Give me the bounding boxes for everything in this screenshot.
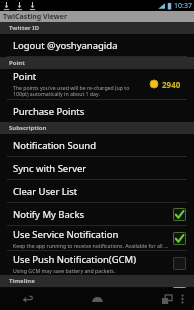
button[interactable]: Recent apps — [156, 288, 178, 310]
button[interactable]: Show User Name — [0, 287, 194, 288]
staticText: Use Service Notification — [13, 228, 119, 241]
staticText: Clear User List — [13, 185, 78, 198]
staticText: Timeline — [9, 277, 35, 285]
staticText: 2940 — [162, 79, 181, 90]
button[interactable]: Checked — [173, 287, 186, 288]
button[interactable]: Unchecked — [173, 257, 186, 270]
button[interactable]: Checked — [173, 208, 186, 221]
staticText: Subscription — [9, 124, 47, 132]
staticText: Notification Sound — [13, 139, 96, 152]
staticText: Keep the app running to receive notifica… — [13, 242, 169, 249]
staticText: The points you've used will be re-charge… — [13, 84, 146, 98]
staticText: Purchase Points — [13, 105, 85, 118]
button[interactable]: More options — [175, 292, 189, 306]
button[interactable]: Back — [16, 288, 38, 310]
button[interactable]: Clear User List — [0, 180, 194, 202]
button[interactable]: Use Push Notification(GCM) — [0, 251, 194, 275]
staticText: Point — [9, 59, 25, 67]
button[interactable]: Logout @yoshyanagida — [0, 34, 194, 56]
staticText: Using GCM may save battery and packets. — [13, 267, 116, 274]
button[interactable]: Use Service Notification — [0, 226, 194, 250]
button[interactable]: Notification Sound — [0, 134, 194, 156]
staticText: Twitter ID — [9, 24, 40, 32]
staticText: Use Push Notification(GCM) — [13, 253, 137, 266]
staticText: Logout @yoshyanagida — [13, 39, 118, 52]
button[interactable]: Notify My Backs — [0, 203, 194, 225]
staticText: TwiCasting Viewer — [3, 12, 68, 22]
staticText: Point — [13, 70, 37, 83]
button[interactable]: Sync with Server — [0, 157, 194, 179]
staticText: Sync with Server — [13, 162, 87, 175]
button[interactable]: Point — [0, 69, 194, 99]
button[interactable]: Purchase Points — [0, 100, 194, 122]
staticText: 10:37 — [174, 1, 192, 11]
button[interactable]: Checked — [173, 232, 186, 245]
staticText: Notify My Backs — [13, 208, 85, 221]
button[interactable]: Home — [86, 288, 108, 310]
